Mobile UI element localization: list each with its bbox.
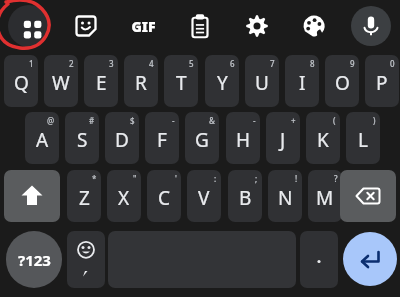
- button[interactable]: B: [228, 170, 262, 222]
- button[interactable]: T: [164, 55, 198, 107]
- button[interactable]: V: [187, 170, 221, 222]
- staticText: &: [209, 115, 215, 126]
- staticText: 0: [390, 58, 395, 69]
- button[interactable]: Stickers: [61, 0, 111, 52]
- staticText: R: [135, 70, 147, 96]
- staticText: -: [253, 115, 256, 126]
- staticText: X: [118, 185, 130, 211]
- staticText: *: [92, 173, 97, 184]
- staticText: -: [172, 115, 175, 126]
- button[interactable]: GIF: [118, 0, 168, 52]
- staticText: 2: [69, 58, 74, 69]
- button[interactable]: S: [65, 112, 99, 164]
- staticText: F: [157, 127, 167, 153]
- button[interactable]: Enter: [343, 232, 397, 286]
- staticText: I: [299, 70, 306, 96]
- staticText: ": [133, 173, 137, 184]
- button[interactable]: W: [44, 55, 78, 107]
- staticText: (: [333, 115, 336, 126]
- staticText: 1: [29, 58, 34, 69]
- staticText: G: [195, 127, 209, 153]
- button[interactable]: X: [107, 170, 141, 222]
- staticText: K: [317, 127, 329, 153]
- staticText: L: [358, 127, 368, 153]
- staticText: Y: [217, 70, 228, 96]
- button[interactable]: L: [346, 112, 380, 164]
- staticText: 9: [350, 58, 355, 69]
- button[interactable]: Clipboard: [175, 0, 225, 52]
- staticText: 5: [189, 58, 194, 69]
- staticText: +: [291, 115, 296, 126]
- staticText: ?: [334, 173, 338, 184]
- button[interactable]: Backspace: [340, 170, 396, 222]
- staticText: Z: [79, 185, 90, 211]
- button[interactable]: Emoji and comma: [67, 231, 105, 288]
- staticText: J: [280, 127, 286, 153]
- staticText: V: [198, 185, 210, 211]
- staticText: GIF: [131, 17, 156, 36]
- button[interactable]: J: [266, 112, 300, 164]
- button[interactable]: Shift: [4, 170, 60, 222]
- staticText: B: [239, 185, 252, 211]
- button[interactable]: O: [325, 55, 359, 107]
- button[interactable]: G: [185, 112, 219, 164]
- staticText: N: [278, 185, 293, 211]
- button[interactable]: R: [124, 55, 158, 107]
- staticText: ': [175, 173, 177, 184]
- staticText: T: [176, 70, 187, 96]
- staticText: C: [158, 185, 171, 211]
- button[interactable]: P: [365, 55, 399, 107]
- staticText: :: [214, 173, 217, 184]
- staticText: 3: [109, 58, 114, 69]
- staticText: !: [295, 173, 298, 184]
- button[interactable]: Period: [300, 231, 338, 288]
- button[interactable]: A: [25, 112, 59, 164]
- button[interactable]: K: [306, 112, 340, 164]
- staticText: H: [236, 127, 251, 153]
- staticText: 4: [149, 58, 154, 69]
- button[interactable]: U: [245, 55, 279, 107]
- button[interactable]: F: [145, 112, 179, 164]
- staticText: A: [36, 127, 49, 153]
- button[interactable]: I: [285, 55, 319, 107]
- button[interactable]: C: [147, 170, 181, 222]
- button[interactable]: Voice input: [346, 0, 396, 52]
- button[interactable]: Q: [4, 55, 38, 107]
- button[interactable]: Settings: [232, 0, 282, 52]
- staticText: ;: [255, 173, 258, 184]
- button[interactable]: H: [226, 112, 260, 164]
- staticText: $: [130, 115, 135, 126]
- staticText: ?123: [18, 250, 51, 270]
- staticText: ): [373, 115, 376, 126]
- staticText: @: [47, 115, 55, 126]
- staticText: S: [77, 127, 88, 153]
- staticText: #: [89, 115, 95, 126]
- staticText: 8: [310, 58, 315, 69]
- staticText: Q: [14, 70, 29, 96]
- staticText: 6: [230, 58, 235, 69]
- button[interactable]: D: [105, 112, 139, 164]
- staticText: E: [96, 70, 107, 96]
- staticText: U: [255, 70, 269, 96]
- staticText: D: [115, 127, 129, 153]
- staticText: P: [376, 70, 388, 96]
- button[interactable]: ?123: [6, 231, 62, 288]
- button[interactable]: Y: [205, 55, 239, 107]
- button[interactable]: N: [268, 170, 302, 222]
- button[interactable]: E: [84, 55, 118, 107]
- staticText: M: [316, 185, 334, 211]
- staticText: O: [335, 70, 350, 96]
- button[interactable]: App grid: [4, 0, 54, 52]
- staticText: W: [52, 70, 70, 96]
- button[interactable]: Z: [67, 170, 101, 222]
- button[interactable]: Themes: [289, 0, 339, 52]
- staticText: 7: [270, 58, 275, 69]
- button[interactable]: M: [308, 170, 342, 222]
